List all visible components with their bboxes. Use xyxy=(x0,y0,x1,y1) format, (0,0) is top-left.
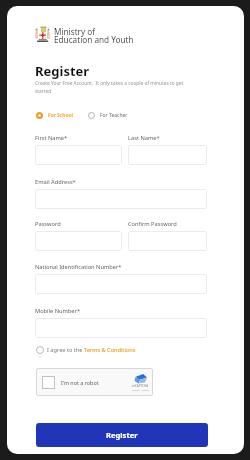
staticText: For Teacher xyxy=(100,112,128,119)
staticText: Register xyxy=(106,430,138,440)
staticText: First Name* xyxy=(35,134,68,142)
button[interactable]: I'm not a robot xyxy=(36,368,153,396)
button[interactable] xyxy=(35,189,207,209)
button[interactable] xyxy=(35,274,207,294)
staticText: Education and Youth xyxy=(54,34,134,45)
staticText: Terms & Conditions xyxy=(84,346,136,354)
staticText: Privacy - Terms xyxy=(132,388,149,391)
staticText: I'm not a robot xyxy=(61,379,99,386)
button[interactable]: I agree to the xyxy=(36,346,136,354)
staticText: Password xyxy=(35,220,61,228)
staticText: Create Your Free Account. It only takes … xyxy=(35,80,195,94)
staticText: reCAPTCHA xyxy=(132,384,149,388)
staticText: Ministry of xyxy=(54,26,96,37)
button[interactable] xyxy=(35,318,207,338)
button[interactable]: Register xyxy=(36,423,208,447)
staticText: Mobile Number* xyxy=(35,307,81,315)
button[interactable] xyxy=(128,145,207,165)
button[interactable] xyxy=(35,231,122,251)
button[interactable]: For School xyxy=(36,112,73,119)
staticText: National Identification Number* xyxy=(35,263,122,271)
button[interactable] xyxy=(128,231,207,251)
staticText: Register xyxy=(35,62,90,80)
staticText: Email Address* xyxy=(35,178,76,186)
staticText: Last Name* xyxy=(128,134,160,142)
staticText: Confirm Password xyxy=(128,220,177,228)
staticText: I agree to the xyxy=(47,346,84,354)
staticText: For School xyxy=(48,112,73,119)
button[interactable]: For Teacher xyxy=(88,112,128,119)
button[interactable] xyxy=(35,145,122,165)
